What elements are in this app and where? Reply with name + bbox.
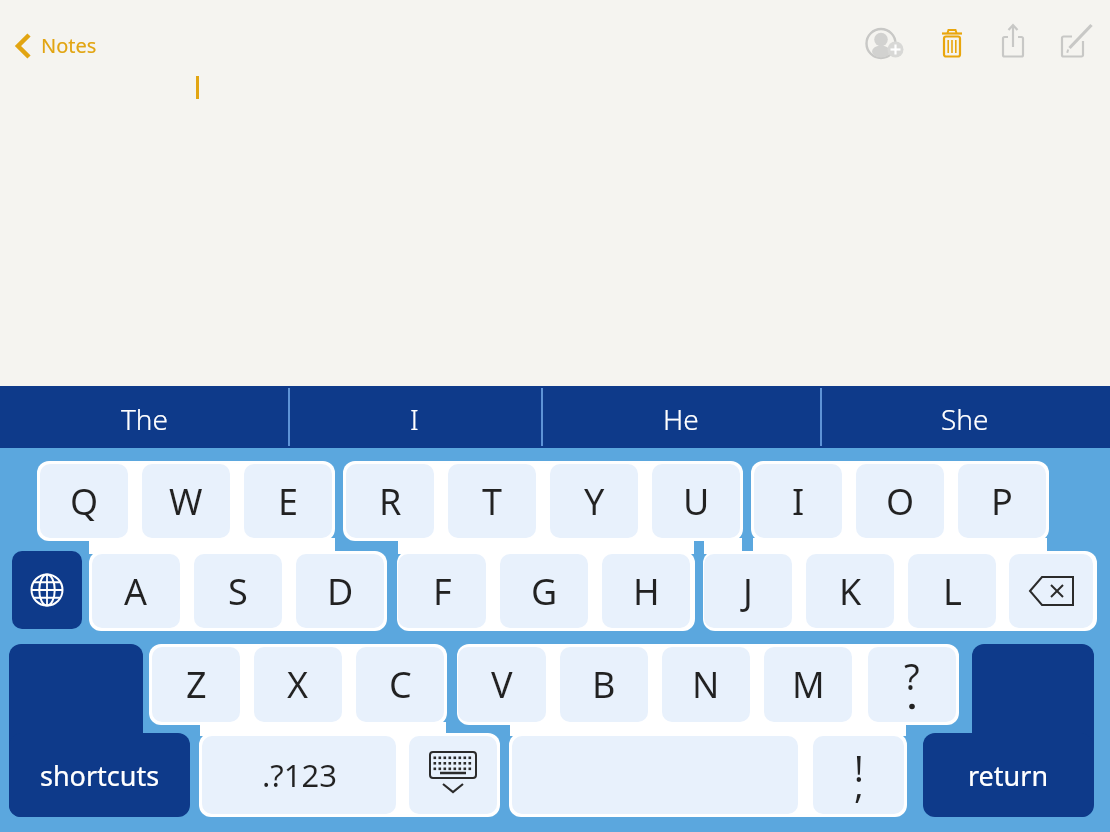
- staticText: F: [433, 567, 452, 616]
- staticText: W: [169, 477, 203, 526]
- button[interactable]: I: [288, 388, 541, 450]
- staticText: ,: [854, 760, 864, 809]
- button[interactable]: She: [820, 388, 1110, 450]
- staticText: Notes: [41, 32, 97, 59]
- staticText: X: [287, 660, 309, 709]
- button[interactable]: Z: [152, 647, 240, 722]
- button[interactable]: [12, 551, 82, 629]
- staticText: She: [941, 400, 989, 438]
- button[interactable]: U: [652, 464, 740, 538]
- staticText: O: [886, 477, 915, 526]
- button[interactable]: [813, 736, 904, 814]
- button[interactable]: Q: [40, 464, 128, 538]
- button[interactable]: [409, 736, 497, 814]
- staticText: E: [278, 477, 299, 526]
- staticText: .?123: [262, 754, 337, 796]
- button[interactable]: B: [560, 647, 648, 722]
- staticText: The: [121, 400, 168, 438]
- staticText: N: [692, 660, 720, 709]
- staticText: P: [991, 477, 1013, 526]
- button[interactable]: N: [662, 647, 750, 722]
- staticText: S: [228, 567, 248, 616]
- button[interactable]: F: [398, 554, 486, 628]
- button[interactable]: Y: [550, 464, 638, 538]
- staticText: M: [792, 660, 825, 709]
- staticText: H: [633, 567, 660, 616]
- button[interactable]: [1056, 18, 1098, 62]
- staticText: A: [124, 567, 148, 616]
- button[interactable]: He: [541, 388, 820, 450]
- button[interactable]: The: [0, 388, 288, 450]
- staticText: !: [854, 744, 864, 793]
- button[interactable]: [860, 22, 906, 64]
- staticText: R: [379, 477, 402, 526]
- staticText: K: [839, 567, 862, 616]
- staticText: He: [663, 400, 699, 438]
- staticText: I: [410, 400, 419, 438]
- staticText: J: [743, 567, 753, 616]
- button[interactable]: G: [500, 554, 588, 628]
- button[interactable]: H: [602, 554, 690, 628]
- button[interactable]: J: [704, 554, 792, 628]
- staticText: B: [592, 660, 616, 709]
- staticText: Z: [186, 660, 207, 709]
- button[interactable]: M: [764, 647, 852, 722]
- staticText: V: [491, 660, 513, 709]
- staticText: ?: [904, 652, 920, 701]
- button[interactable]: C: [356, 647, 444, 722]
- button[interactable]: O: [856, 464, 944, 538]
- staticText: D: [327, 567, 354, 616]
- button[interactable]: [868, 647, 956, 722]
- button[interactable]: A: [92, 554, 180, 628]
- button[interactable]: L: [908, 554, 996, 628]
- staticText: return: [968, 757, 1049, 794]
- button[interactable]: [936, 24, 968, 62]
- staticText: G: [531, 567, 558, 616]
- button[interactable]: .?123: [202, 736, 396, 814]
- staticText: Q: [70, 477, 99, 526]
- staticText: shortcuts: [40, 757, 160, 794]
- button[interactable]: W: [142, 464, 230, 538]
- button[interactable]: P: [958, 464, 1046, 538]
- button[interactable]: R: [346, 464, 434, 538]
- button[interactable]: I: [754, 464, 842, 538]
- button[interactable]: Notes: [10, 26, 105, 62]
- button[interactable]: D: [296, 554, 384, 628]
- button[interactable]: S: [194, 554, 282, 628]
- button[interactable]: [997, 20, 1029, 62]
- button[interactable]: V: [458, 647, 546, 722]
- button[interactable]: shortcuts: [9, 733, 190, 817]
- button[interactable]: E: [244, 464, 332, 538]
- button[interactable]: X: [254, 647, 342, 722]
- button[interactable]: return: [923, 733, 1093, 817]
- button[interactable]: T: [448, 464, 536, 538]
- staticText: I: [792, 477, 805, 526]
- button[interactable]: [1009, 554, 1093, 628]
- button[interactable]: K: [806, 554, 894, 628]
- staticText: Y: [584, 477, 605, 526]
- staticText: U: [683, 477, 710, 526]
- staticText: C: [389, 660, 412, 709]
- staticText: L: [943, 567, 962, 616]
- staticText: T: [482, 477, 503, 526]
